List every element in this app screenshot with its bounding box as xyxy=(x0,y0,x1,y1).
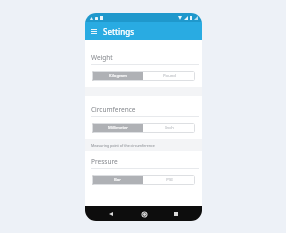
staticText: Kilogram xyxy=(109,73,127,79)
staticText: PSI xyxy=(166,177,173,183)
button[interactable]: Home xyxy=(138,208,150,220)
staticText: Weight xyxy=(91,53,113,62)
staticText: Millimeter xyxy=(108,125,128,131)
staticText: Pound xyxy=(163,73,176,79)
staticText: Bar xyxy=(114,177,121,183)
staticText: Pressure xyxy=(91,157,118,166)
button[interactable]: Open navigation menu xyxy=(88,26,99,37)
button[interactable]: Inch xyxy=(143,123,195,133)
button[interactable]: Pound xyxy=(143,71,195,81)
button[interactable]: Bar xyxy=(92,175,143,185)
staticText: Measuring point of the circumference xyxy=(91,143,155,148)
staticText: Circumference xyxy=(91,105,136,114)
button[interactable]: Millimeter xyxy=(92,123,143,133)
staticText: Inch xyxy=(165,125,174,131)
button[interactable]: Back xyxy=(105,208,117,220)
button[interactable]: Kilogram xyxy=(92,71,143,81)
button[interactable]: PSI xyxy=(143,175,195,185)
button[interactable]: Recent apps xyxy=(170,208,182,220)
staticText: Settings xyxy=(103,26,135,37)
